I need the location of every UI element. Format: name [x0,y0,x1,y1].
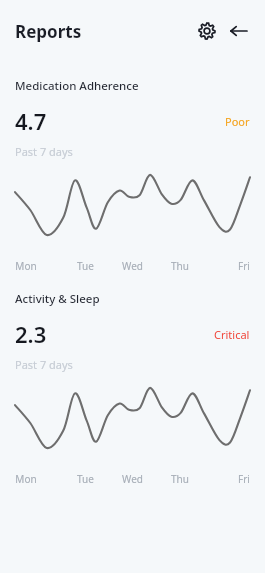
staticText: Mon [15,259,37,273]
staticText: Tue [77,259,94,273]
staticText: Past 7 days [15,357,73,372]
staticText: Mon [15,472,37,486]
staticText: Critical [214,327,250,342]
staticText: Poor [225,114,250,129]
staticText: Past 7 days [15,144,73,159]
staticText: Wed [122,472,143,486]
staticText: 4.7 [15,106,47,136]
staticText: Medication Adherence [15,78,139,94]
button[interactable]: Activity & Sleep [0,291,265,486]
staticText: 2.3 [15,319,47,349]
button[interactable]: Medication Adherence [0,78,265,273]
staticText: Tue [77,472,94,486]
staticText: Activity & Sleep [15,291,100,307]
staticText: Wed [122,259,143,273]
button[interactable]: Settings [193,17,221,45]
staticText: Fri [238,259,250,273]
button[interactable]: Back [225,17,253,45]
staticText: Fri [238,472,250,486]
staticText: Reports [15,20,82,43]
staticText: Thu [171,472,189,486]
staticText: Thu [171,259,189,273]
